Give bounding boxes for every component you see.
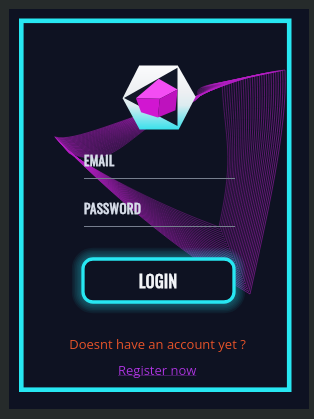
button[interactable]: LOGIN (75, 251, 242, 310)
button[interactable]: Register now (118, 361, 197, 379)
staticText: LOGIN (139, 269, 178, 293)
staticText: PASSWORD (84, 198, 142, 217)
staticText: EMAIL (84, 150, 115, 169)
button[interactable]: Doesnt have an account yet ? (69, 335, 246, 353)
